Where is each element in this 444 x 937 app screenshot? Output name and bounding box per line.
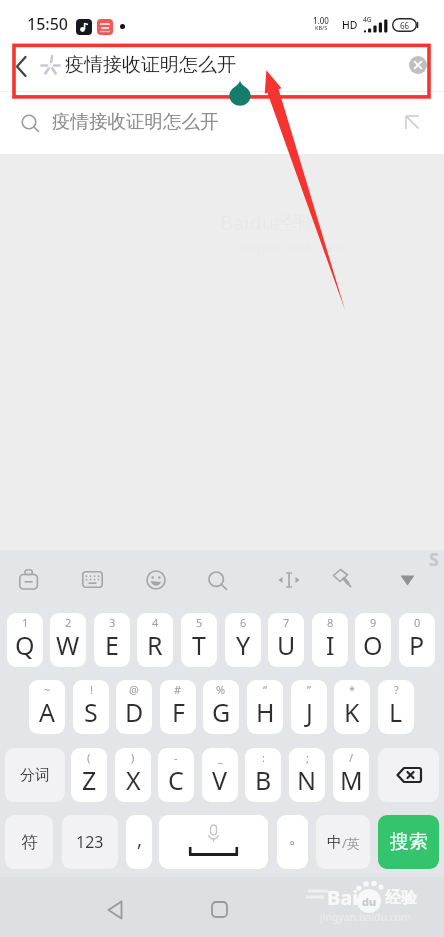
staticText: R bbox=[147, 628, 163, 662]
staticText: # bbox=[174, 682, 182, 697]
staticText: N bbox=[297, 763, 317, 797]
staticText: KB/S bbox=[315, 24, 328, 31]
staticText: Bai bbox=[327, 884, 359, 911]
staticText: : bbox=[262, 750, 265, 765]
button[interactable]: ) bbox=[115, 748, 151, 802]
staticText: jingyan.baidu.com bbox=[320, 910, 411, 924]
staticText: 经验 bbox=[385, 888, 417, 908]
button[interactable]: # bbox=[160, 680, 196, 734]
staticText: * bbox=[349, 682, 356, 697]
staticText: F bbox=[172, 695, 185, 729]
button[interactable]: _ bbox=[202, 748, 238, 802]
staticText: W bbox=[56, 628, 80, 662]
staticText: 5 bbox=[196, 615, 203, 630]
button[interactable]: “ bbox=[247, 680, 283, 734]
staticText: G bbox=[212, 695, 231, 729]
staticText: 4 bbox=[152, 615, 159, 630]
staticText: I bbox=[326, 628, 335, 662]
button[interactable]: / bbox=[333, 748, 369, 802]
staticText: S bbox=[429, 547, 439, 572]
staticText: 疫情接收证明怎么开 bbox=[65, 53, 236, 77]
staticText: du bbox=[362, 894, 377, 909]
staticText: 符 bbox=[21, 832, 38, 853]
staticText: /英 bbox=[342, 834, 360, 852]
staticText: P bbox=[409, 628, 425, 662]
staticText: 123 bbox=[76, 831, 104, 853]
button[interactable] bbox=[211, 901, 228, 918]
button[interactable]: ” bbox=[291, 680, 327, 734]
staticText: T bbox=[192, 628, 206, 662]
staticText: 0 bbox=[414, 615, 421, 630]
button[interactable]: 8 bbox=[312, 613, 348, 667]
button[interactable]: ! bbox=[73, 680, 109, 734]
staticText: 。 bbox=[289, 828, 305, 848]
staticText: M bbox=[340, 763, 363, 797]
button[interactable]: ~ bbox=[29, 680, 65, 734]
button[interactable]: 9 bbox=[355, 613, 391, 667]
staticText: Baidu经验 bbox=[220, 209, 315, 236]
staticText: A bbox=[39, 695, 55, 729]
staticText: O bbox=[363, 628, 383, 662]
button[interactable]: 6 bbox=[225, 613, 261, 667]
staticText: Y bbox=[236, 628, 251, 662]
staticText: , bbox=[137, 826, 143, 852]
button[interactable]: 疫情接收证明怎么开 bbox=[0, 92, 444, 154]
button[interactable]: ( bbox=[71, 748, 107, 802]
button[interactable]: 1 bbox=[7, 613, 43, 667]
button[interactable]: ? bbox=[378, 680, 414, 734]
staticText: 3 bbox=[109, 615, 116, 630]
button[interactable]: 。 bbox=[277, 815, 308, 869]
button[interactable]: : bbox=[245, 748, 281, 802]
staticText: 中 bbox=[327, 833, 342, 852]
staticText: 搜索 bbox=[390, 830, 428, 854]
staticText: % bbox=[216, 682, 226, 697]
staticText: ” bbox=[307, 682, 311, 697]
button[interactable]: 0 bbox=[399, 613, 435, 667]
button[interactable]: 疫情接收证明怎么开 bbox=[0, 44, 444, 92]
button[interactable]: - bbox=[158, 748, 194, 802]
staticText: 66 bbox=[400, 20, 410, 31]
staticText: 8 bbox=[327, 615, 334, 630]
button[interactable] bbox=[159, 815, 268, 869]
button[interactable]: 5 bbox=[181, 613, 217, 667]
staticText: 2 bbox=[65, 615, 72, 630]
staticText: C bbox=[168, 763, 184, 797]
staticText: U bbox=[277, 628, 296, 662]
staticText: K bbox=[344, 695, 360, 729]
button[interactable]: % bbox=[203, 680, 239, 734]
button[interactable]: @ bbox=[116, 680, 152, 734]
staticText: - bbox=[174, 750, 178, 765]
staticText: @ bbox=[129, 682, 139, 697]
staticText: / bbox=[349, 750, 354, 765]
button[interactable]: ; bbox=[289, 748, 325, 802]
button[interactable]: 符 bbox=[5, 815, 53, 869]
staticText: ( bbox=[87, 750, 91, 765]
staticText: jingyan.baidu.com bbox=[240, 239, 344, 255]
staticText: 15:50 bbox=[27, 13, 68, 35]
staticText: 6 bbox=[240, 615, 247, 630]
button[interactable]: 123 bbox=[62, 815, 118, 869]
button[interactable]: 7 bbox=[268, 613, 304, 667]
staticText: ! bbox=[90, 682, 93, 697]
button[interactable]: 3 bbox=[94, 613, 130, 667]
staticText: ~ bbox=[44, 682, 51, 697]
button[interactable]: 中 bbox=[316, 815, 370, 869]
button[interactable]: 搜索 bbox=[378, 815, 439, 869]
button[interactable]: 分词 bbox=[5, 748, 65, 802]
button[interactable]: 2 bbox=[50, 613, 86, 667]
staticText: E bbox=[105, 628, 119, 662]
staticText: Z bbox=[82, 763, 97, 797]
staticText: _ bbox=[218, 750, 223, 765]
button[interactable]: 4 bbox=[137, 613, 173, 667]
button[interactable]: , bbox=[126, 815, 152, 869]
staticText: HD bbox=[342, 18, 358, 32]
staticText: 1 bbox=[22, 615, 29, 630]
button[interactable] bbox=[409, 56, 427, 74]
button[interactable] bbox=[106, 900, 124, 920]
staticText: D bbox=[125, 695, 144, 729]
staticText: B bbox=[255, 763, 272, 797]
staticText: 9 bbox=[370, 615, 377, 630]
staticText: 1.00 bbox=[313, 15, 329, 26]
button[interactable] bbox=[378, 748, 439, 802]
button[interactable]: * bbox=[334, 680, 370, 734]
